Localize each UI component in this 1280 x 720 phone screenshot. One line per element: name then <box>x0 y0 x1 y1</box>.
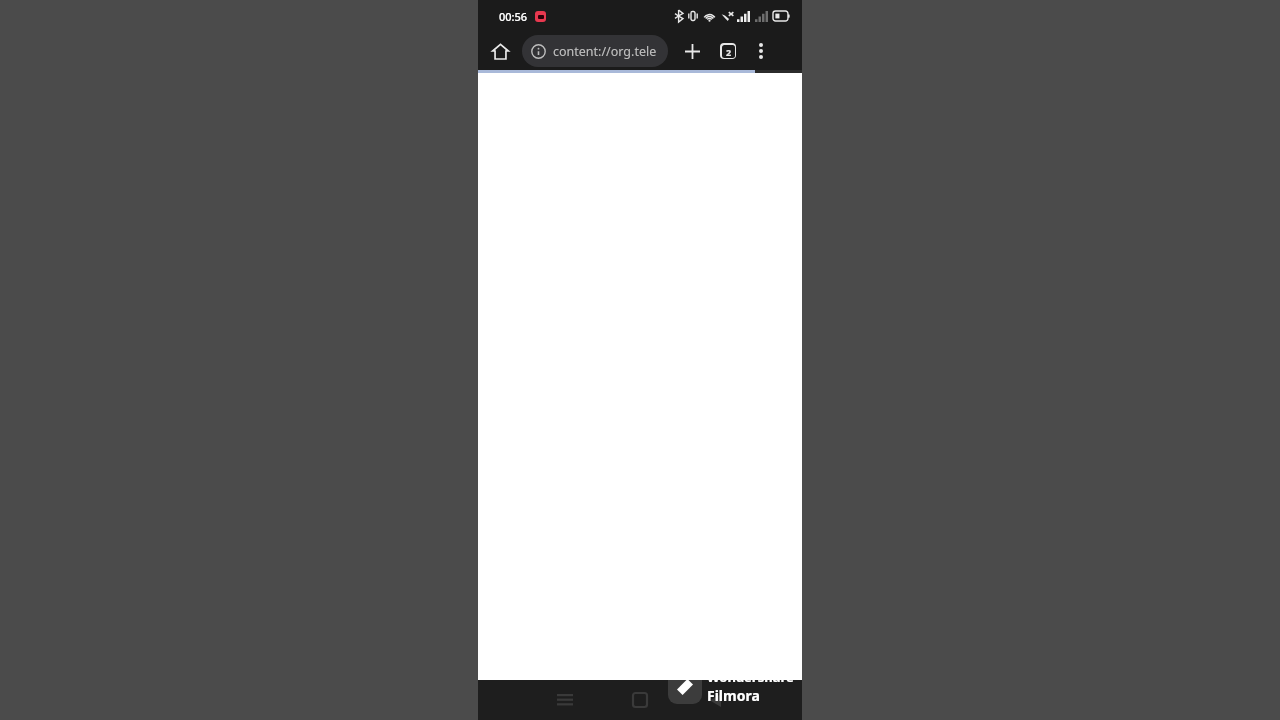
button[interactable]: content://org.tele <box>522 35 668 67</box>
staticText: 2 <box>726 46 732 58</box>
button[interactable]: Recent apps <box>548 683 582 717</box>
button[interactable]: Home <box>623 683 657 717</box>
button[interactable]: New tab <box>678 37 706 65</box>
staticText: content://org.tele <box>553 43 657 60</box>
button[interactable]: More options <box>748 38 774 64</box>
button[interactable]: Back <box>698 683 732 717</box>
staticText: Wondershare <box>707 668 794 686</box>
button[interactable]: Tabs: 2 <box>715 38 741 64</box>
staticText: 00:56 <box>499 9 528 24</box>
staticText: Filmora <box>707 686 760 705</box>
button[interactable]: Home <box>487 38 513 64</box>
